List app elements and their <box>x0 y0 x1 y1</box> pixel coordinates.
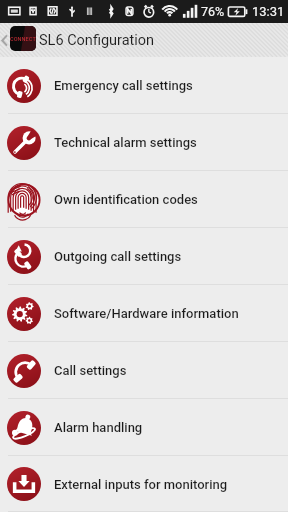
button[interactable]: Alarm handling <box>0 399 288 456</box>
button[interactable]: Own identification codes <box>0 171 288 228</box>
staticText: 76% <box>201 4 225 19</box>
staticText: Software/Hardware information <box>54 306 239 321</box>
staticText: External inputs for monitoring <box>54 477 228 492</box>
button[interactable]: Call settings <box>0 342 288 399</box>
staticText: 13:31 <box>252 4 285 19</box>
staticText: SL6 Configuration <box>39 32 155 49</box>
button[interactable]: External inputs for monitoring <box>0 456 288 512</box>
staticText: CONNECT <box>10 36 36 42</box>
staticText: Call settings <box>54 363 127 378</box>
staticText: Emergency call settings <box>54 78 193 93</box>
staticText: Alarm handling <box>54 420 143 435</box>
staticText: Own identification codes <box>54 192 198 207</box>
button[interactable]: Technical alarm settings <box>0 114 288 171</box>
staticText: Outgoing call settings <box>54 249 182 264</box>
button[interactable]: Software/Hardware information <box>0 285 288 342</box>
staticText: Technical alarm settings <box>54 135 197 150</box>
button[interactable]: Outgoing call settings <box>0 228 288 285</box>
button[interactable]: Navigate up <box>0 23 10 57</box>
button[interactable]: Emergency call settings <box>0 57 288 114</box>
